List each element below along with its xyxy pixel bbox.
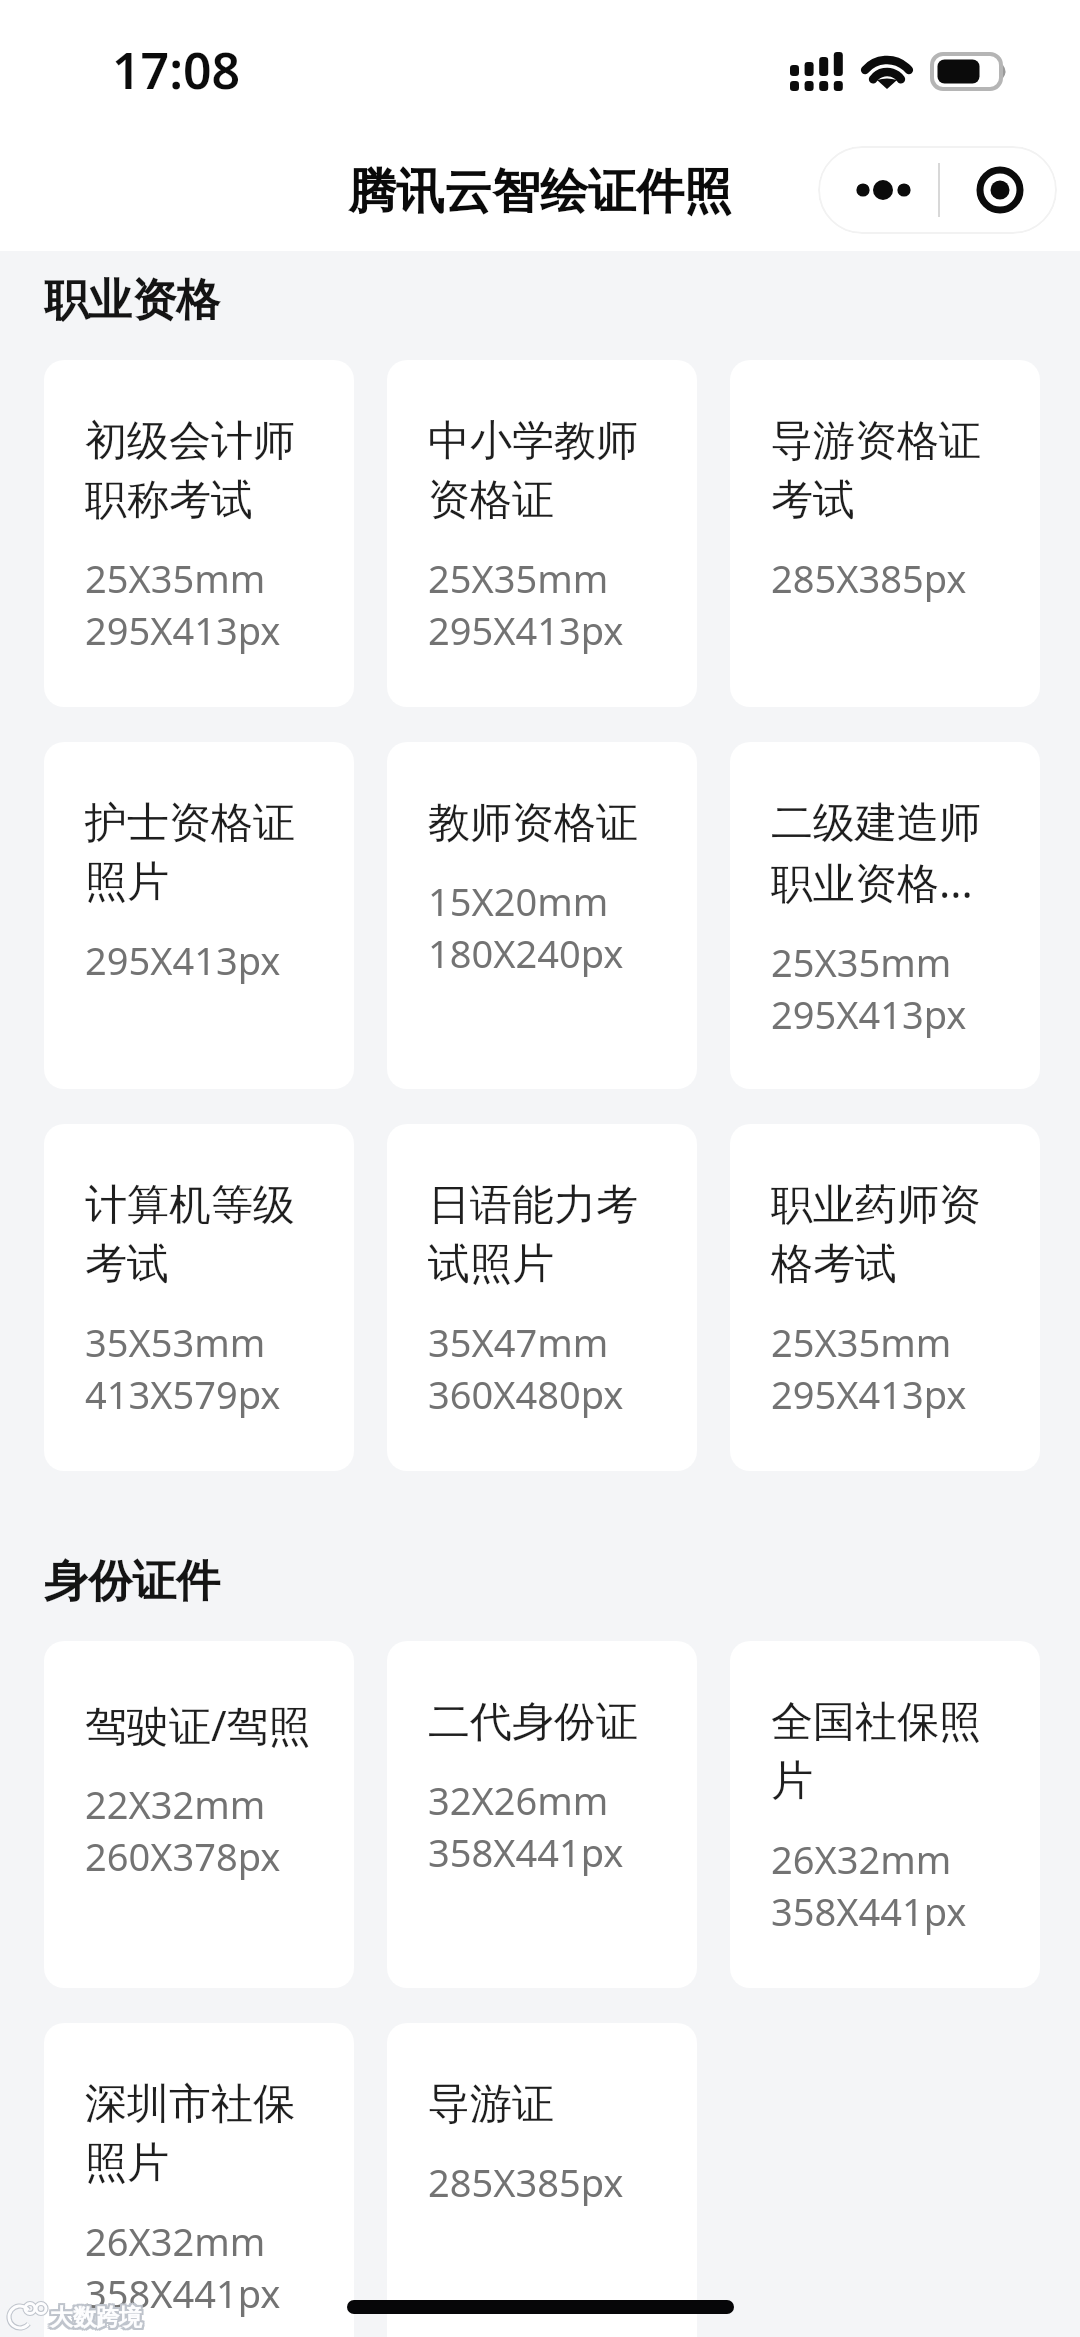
staticText: 295X413px — [771, 988, 967, 1040]
staticText: 大数跨境 — [48, 2305, 140, 2334]
staticText: 260X378px — [85, 1830, 281, 1882]
staticText: 413X579px — [85, 1368, 281, 1420]
staticText: 15X20mm — [428, 875, 609, 927]
button[interactable]: Close mini program — [938, 146, 1057, 234]
button[interactable]: 二代身份证 — [387, 1641, 697, 1988]
button[interactable]: 深圳市社保照片 — [44, 2023, 354, 2337]
staticText: 295X413px — [85, 934, 281, 986]
staticText: 大数跨境 — [48, 2303, 140, 2332]
button[interactable]: 教师资格证 — [387, 742, 697, 1089]
staticText: 25X35mm — [85, 552, 266, 604]
staticText: 全国社保照片 — [771, 1696, 999, 1808]
staticText: 计算机等级考试 — [85, 1179, 313, 1291]
staticText: 职业药师资格考试 — [771, 1179, 999, 1291]
staticText: 导游资格证考试 — [771, 415, 999, 527]
staticText: 295X413px — [85, 604, 281, 656]
staticText: 大数跨境 — [50, 2303, 142, 2332]
staticText: 17:08 — [112, 36, 241, 104]
staticText: 32X26mm — [428, 1774, 609, 1826]
button[interactable]: 计算机等级考试 — [44, 1124, 354, 1471]
staticText: 职业资格 — [44, 273, 220, 328]
staticText: 驾驶证/驾照 — [85, 1696, 311, 1753]
staticText: 大数跨境 — [52, 2303, 144, 2332]
button[interactable]: 驾驶证/驾照 — [44, 1641, 354, 1988]
button[interactable]: More options — [818, 146, 938, 234]
button[interactable]: 护士资格证照片 — [44, 742, 354, 1089]
staticText: 身份证件 — [44, 1554, 220, 1609]
staticText: 大数跨境 — [52, 2305, 144, 2334]
staticText: 35X53mm — [85, 1316, 266, 1368]
staticText: 二级建造师职业资格... — [771, 797, 999, 911]
staticText: 180X240px — [428, 927, 624, 979]
staticText: 295X413px — [771, 1368, 967, 1420]
staticText: 26X32mm — [85, 2215, 266, 2267]
staticText: 360X480px — [428, 1368, 624, 1420]
staticText: 25X35mm — [771, 936, 952, 988]
button[interactable]: 初级会计师职称考试 — [44, 360, 354, 707]
staticText: 导游证 — [428, 2078, 554, 2131]
button[interactable]: 导游证 — [387, 2023, 697, 2337]
button[interactable]: 中小学教师资格证 — [387, 360, 697, 707]
staticText: 358X441px — [428, 1826, 624, 1878]
staticText: 26X32mm — [771, 1833, 952, 1885]
button[interactable]: 全国社保照片 — [730, 1641, 1040, 1988]
staticText: 22X32mm — [85, 1778, 266, 1830]
button[interactable]: 二级建造师职业资格... — [730, 742, 1040, 1089]
staticText: 二代身份证 — [428, 1696, 638, 1749]
button[interactable]: 职业药师资格考试 — [730, 1124, 1040, 1471]
staticText: 大数跨境 — [50, 2301, 142, 2330]
staticText: 大数跨境 — [48, 2301, 140, 2330]
staticText: 25X35mm — [771, 1316, 952, 1368]
staticText: 285X385px — [428, 2156, 624, 2208]
staticText: 大数跨境 — [50, 2305, 142, 2334]
staticText: 护士资格证照片 — [85, 797, 313, 909]
staticText: 教师资格证 — [428, 797, 638, 850]
staticText: 深圳市社保照片 — [85, 2078, 313, 2190]
button[interactable]: 导游资格证考试 — [730, 360, 1040, 707]
button[interactable]: 日语能力考试照片 — [387, 1124, 697, 1471]
staticText: 大数跨境 — [52, 2301, 144, 2330]
staticText: 35X47mm — [428, 1316, 609, 1368]
staticText: 大数跨境 — [50, 2303, 142, 2332]
staticText: 腾讯云智绘证件照 — [0, 162, 1080, 222]
staticText: 25X35mm — [428, 552, 609, 604]
staticText: 358X441px — [771, 1885, 967, 1937]
staticText: 295X413px — [428, 604, 624, 656]
staticText: 中小学教师资格证 — [428, 415, 656, 527]
staticText: 初级会计师职称考试 — [85, 415, 313, 527]
staticText: 285X385px — [771, 552, 967, 604]
staticText: 358X441px — [85, 2267, 281, 2319]
staticText: 日语能力考试照片 — [428, 1179, 656, 1291]
